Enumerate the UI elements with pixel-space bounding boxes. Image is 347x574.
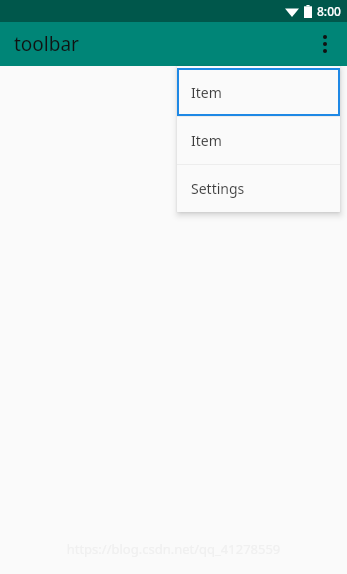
button[interactable]: Item <box>177 117 340 164</box>
staticText: Item <box>191 83 222 102</box>
button[interactable]: Item <box>177 66 340 116</box>
button[interactable]: More options <box>303 22 347 66</box>
button[interactable]: Settings <box>177 165 340 212</box>
staticText: Item <box>191 131 222 150</box>
staticText: 8:00 <box>317 3 341 19</box>
staticText: toolbar <box>14 31 79 57</box>
staticText: Settings <box>191 179 245 198</box>
